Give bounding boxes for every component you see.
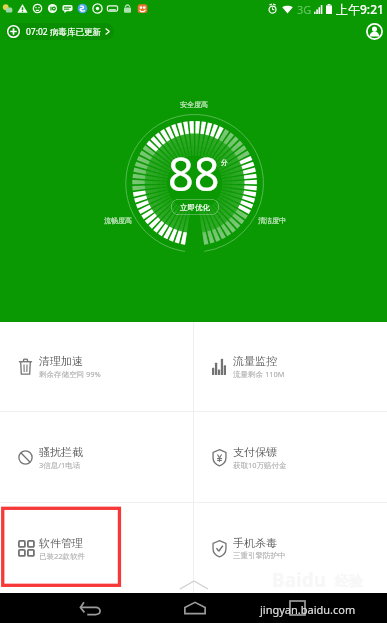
- staticText: 88: [168, 143, 220, 204]
- button[interactable]: 07:02 病毒库已更新: [6, 23, 114, 40]
- staticText: 3G: [297, 2, 312, 17]
- staticText: 经验: [335, 573, 363, 591]
- staticText: 安全度高: [180, 100, 208, 109]
- staticText: 立即优化: [180, 203, 210, 212]
- staticText: 上午9:21: [336, 1, 384, 17]
- staticText: 3信息/1电话: [39, 460, 81, 470]
- button[interactable]: 支付保镖: [194, 412, 387, 502]
- staticText: 获取10万赔付金: [233, 460, 287, 470]
- button[interactable]: 骚扰拦截: [0, 412, 193, 502]
- staticText: 软件管理: [39, 536, 83, 550]
- staticText: 流畅度高: [104, 216, 132, 225]
- button[interactable]: 清理加速: [0, 322, 193, 411]
- staticText: 已装22款软件: [39, 551, 86, 561]
- staticText: 剩余存储空间 99%: [39, 369, 101, 379]
- staticText: 清洁度中: [258, 216, 286, 225]
- staticText: 分: [221, 158, 228, 167]
- staticText: 清理加速: [39, 354, 83, 368]
- staticText: 支付保镖: [233, 445, 277, 459]
- button[interactable]: Account: [366, 23, 383, 40]
- button[interactable]: Home: [173, 593, 217, 623]
- button[interactable]: Recent apps: [275, 593, 319, 623]
- staticText: 流量监控: [233, 354, 277, 368]
- button[interactable]: 流量监控: [194, 322, 387, 411]
- staticText: 三重引擎防护中: [233, 551, 286, 560]
- staticText: 骚扰拦截: [39, 445, 83, 459]
- staticText: Baidu: [272, 567, 327, 593]
- button[interactable]: Back: [69, 593, 113, 623]
- staticText: jingyan.baidu.com: [260, 602, 356, 617]
- staticText: 07:02 病毒库已更新: [26, 26, 101, 38]
- button[interactable]: 手机杀毒: [194, 503, 387, 593]
- staticText: 流量剩余 110M: [233, 369, 285, 379]
- button[interactable]: 软件管理: [0, 503, 193, 593]
- button[interactable]: 立即优化: [171, 199, 219, 215]
- staticText: 手机杀毒: [233, 536, 277, 550]
